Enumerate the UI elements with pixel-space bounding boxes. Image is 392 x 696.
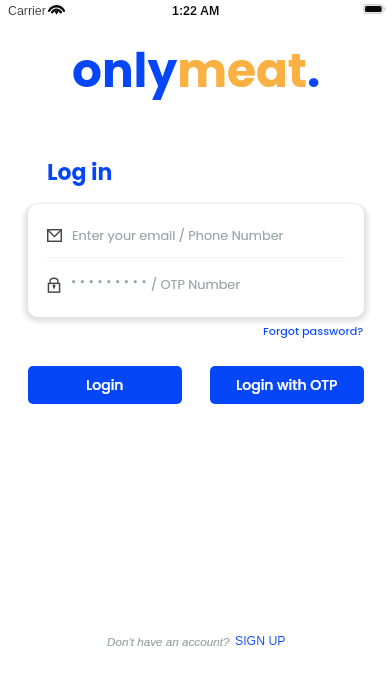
button[interactable]: Forgot password? [263,323,364,339]
button[interactable]: Login with OTP [210,366,364,404]
staticText: SIGN UP [235,634,286,648]
staticText: / OTP Number [151,276,241,294]
staticText: Forgot password? [263,323,364,339]
button[interactable]: Login [28,366,182,404]
staticText: onlymeat. [72,38,321,104]
button[interactable]: / OTP Number [28,258,364,317]
other: Wi-Fi [49,2,64,13]
staticText: Carrier [8,4,46,18]
staticText: Don't have an account? [107,635,230,648]
other: Battery [363,4,386,14]
button[interactable]: Enter your email / Phone Number [28,204,364,257]
staticText: Log in [47,157,113,188]
staticText: Enter your email / Phone Number [72,227,284,245]
staticText: 1:22 AM [172,4,220,18]
staticText: Login with OTP [236,375,338,395]
staticText: Login [86,375,124,395]
button[interactable]: SIGN UP [235,634,286,648]
